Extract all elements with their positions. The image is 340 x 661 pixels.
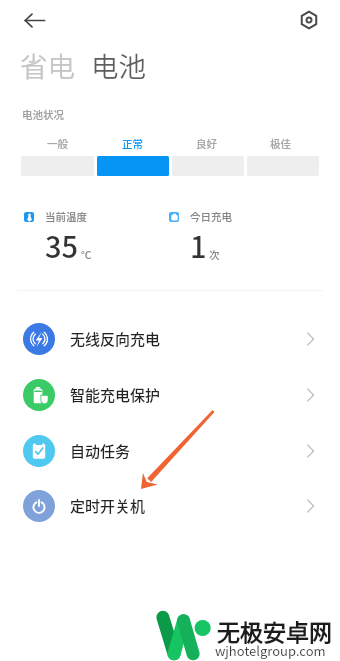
staticText: 极佳 bbox=[270, 136, 291, 151]
staticText: 今日充电 bbox=[190, 209, 232, 224]
staticText: 1 bbox=[190, 224, 207, 266]
staticText: 一般 bbox=[47, 136, 68, 151]
staticText: 无线反向充电 bbox=[70, 328, 161, 350]
button[interactable]: Settings bbox=[292, 3, 326, 37]
staticText: 省电 bbox=[20, 45, 75, 85]
staticText: 35 bbox=[45, 224, 79, 266]
staticText: 良好 bbox=[196, 136, 217, 151]
staticText: 电池状况 bbox=[22, 107, 64, 122]
staticText: 正常 bbox=[122, 136, 143, 151]
button[interactable]: 电池 bbox=[91, 45, 146, 85]
staticText: 定时开关机 bbox=[70, 495, 146, 517]
staticText: 当前温度 bbox=[45, 209, 87, 224]
button[interactable]: 智能充电保护 bbox=[0, 367, 340, 422]
staticText: wjhotelgroup.com bbox=[215, 641, 326, 660]
staticText: 自动任务 bbox=[70, 440, 131, 462]
button[interactable]: 定时开关机 bbox=[0, 478, 340, 533]
button[interactable]: 自动任务 bbox=[0, 423, 340, 478]
staticText: 智能充电保护 bbox=[70, 384, 161, 406]
staticText: ℃ bbox=[81, 247, 92, 262]
button[interactable]: 无线反向充电 bbox=[0, 311, 340, 366]
staticText: 次 bbox=[209, 247, 220, 262]
staticText: 电池 bbox=[91, 45, 146, 85]
staticText: 无极安卓网 bbox=[217, 614, 332, 647]
button[interactable]: 省电 bbox=[20, 45, 75, 85]
button[interactable]: Back bbox=[17, 3, 51, 37]
